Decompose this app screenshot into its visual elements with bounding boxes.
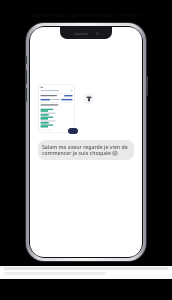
button[interactable]: Attachment options — [83, 93, 94, 104]
button[interactable]: Shared screenshot — [38, 84, 75, 133]
button[interactable]: Salam ma soeur regarde je vien de commen… — [38, 140, 134, 160]
staticText: Salam ma soeur regarde je vien de commen… — [42, 143, 130, 157]
staticText: Salam la sœur regarde je viens de commen… — [31, 12, 142, 19]
